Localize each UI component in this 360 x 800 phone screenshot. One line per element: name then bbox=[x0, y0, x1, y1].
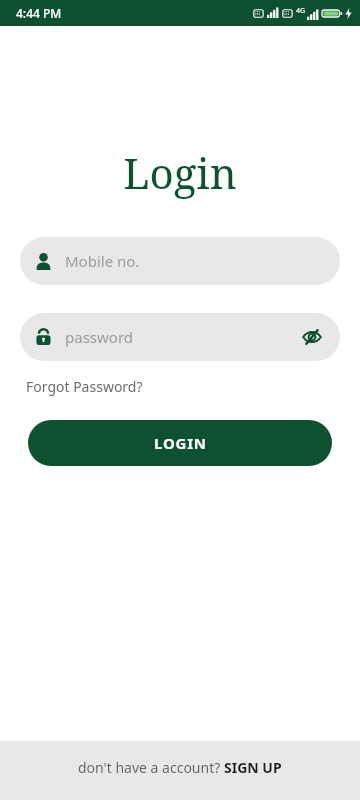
staticText: 4G bbox=[296, 6, 306, 16]
staticText: don't have a account? bbox=[78, 758, 224, 777]
button[interactable]: Show password bbox=[298, 323, 326, 351]
staticText: 4:44 PM bbox=[16, 5, 62, 21]
button[interactable]: Mobile no. bbox=[20, 237, 340, 285]
staticText: password bbox=[65, 327, 298, 347]
staticText: Forgot Password? bbox=[26, 377, 143, 396]
staticText: Login bbox=[123, 144, 237, 201]
button[interactable]: Forgot Password? bbox=[26, 375, 143, 398]
staticText: Mobile no. bbox=[65, 251, 326, 271]
button[interactable]: LOGIN bbox=[28, 420, 332, 466]
staticText: LOGIN bbox=[154, 433, 207, 453]
staticText: SIGN UP bbox=[224, 758, 282, 777]
button[interactable]: password bbox=[20, 313, 340, 361]
button[interactable]: SIGN UP bbox=[224, 758, 282, 777]
